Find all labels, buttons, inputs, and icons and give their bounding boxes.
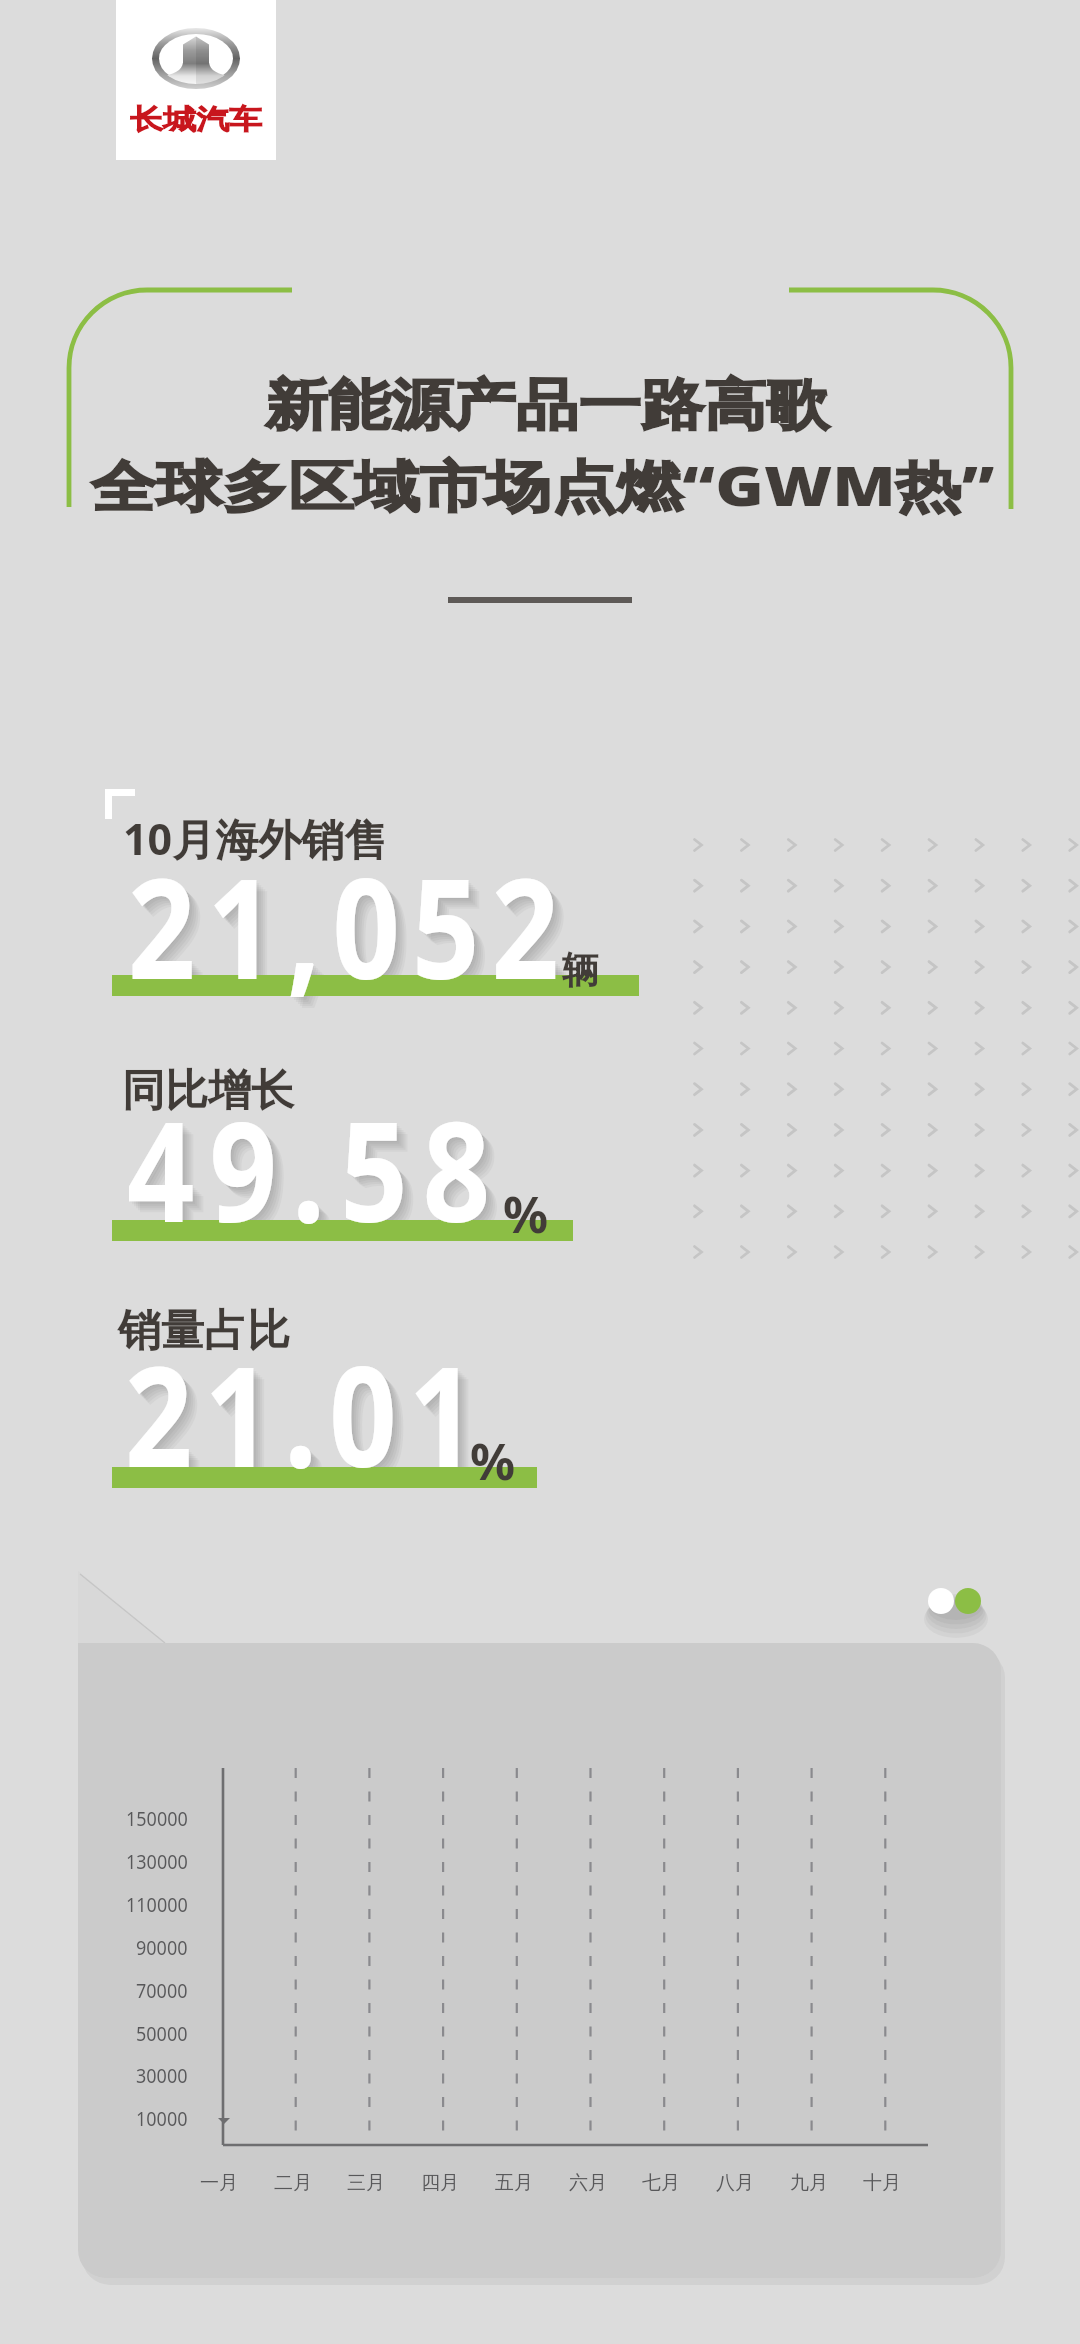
staticText: 21,052 xyxy=(137,841,581,1029)
staticText: 新能源产品一路高歌 xyxy=(265,371,829,440)
staticText: 49.58 xyxy=(138,1086,517,1274)
staticText: 30000 xyxy=(136,2061,188,2090)
staticText: % xyxy=(470,1427,516,1495)
staticText: 21.01 xyxy=(132,1327,496,1515)
button[interactable]: 10月海外销售 21,052辆 xyxy=(105,797,645,1005)
staticText: 10000 xyxy=(136,2104,188,2133)
staticText: 21.01 xyxy=(128,1323,492,1511)
staticText: 21,052 xyxy=(135,839,579,1027)
staticText: 全球多区域市场点燃“GWM热” xyxy=(91,447,994,522)
button[interactable]: Page 1 xyxy=(928,1588,954,1614)
staticText: 49.58 xyxy=(136,1084,515,1272)
staticText: 90000 xyxy=(136,1933,188,1962)
staticText: 150000 xyxy=(126,1804,188,1833)
staticText: 五月 xyxy=(495,2171,533,2195)
button[interactable]: GWM 长城汽车 logo xyxy=(116,0,276,160)
staticText: 21,052 xyxy=(129,833,573,1021)
staticText: 二月 xyxy=(274,2171,312,2195)
staticText: 21.01 xyxy=(134,1329,498,1517)
staticText: 130000 xyxy=(126,1847,188,1876)
staticText: 辆 xyxy=(562,947,599,994)
staticText: 49.58 xyxy=(134,1082,513,1270)
staticText: 同比增长 xyxy=(122,1064,294,1118)
staticText: 21,052 xyxy=(133,837,577,1025)
staticText: 七月 xyxy=(642,2171,680,2195)
staticText: 70000 xyxy=(136,1976,188,2005)
staticText: 10月海外销售 xyxy=(123,809,388,868)
staticText: 21.01 xyxy=(130,1325,494,1513)
staticText: 110000 xyxy=(126,1890,188,1919)
button[interactable]: 销量占比 21.01% xyxy=(105,1292,645,1497)
staticText: 四月 xyxy=(421,2171,459,2195)
staticText: 49.58 xyxy=(127,1075,506,1263)
button[interactable]: Page 2, selected xyxy=(955,1588,981,1614)
staticText: 九月 xyxy=(790,2171,828,2195)
staticText: 21,052 xyxy=(139,843,583,1031)
staticText: 三月 xyxy=(347,2171,385,2195)
staticText: 八月 xyxy=(716,2171,754,2195)
staticText: 销量占比 xyxy=(118,1304,290,1358)
staticText: 21.01 xyxy=(126,1321,490,1509)
staticText: 49.58 xyxy=(128,1076,507,1264)
staticText: 长城汽车 xyxy=(130,102,262,137)
staticText: 49.58 xyxy=(130,1078,509,1266)
staticText: 21.01 xyxy=(136,1331,500,1519)
staticText: 一月 xyxy=(200,2171,238,2195)
staticText: 21,052 xyxy=(128,832,572,1020)
staticText: 50000 xyxy=(136,2019,188,2048)
staticText: 21,052 xyxy=(131,835,575,1023)
staticText: 49.58 xyxy=(132,1080,511,1268)
button[interactable]: 同比增长 49.58% xyxy=(105,1052,645,1250)
staticText: 六月 xyxy=(569,2171,607,2195)
staticText: % xyxy=(503,1180,549,1248)
staticText: 21.01 xyxy=(125,1320,489,1508)
button[interactable]: 月度销量走势图表 xyxy=(78,1643,1001,2278)
staticText: 十月 xyxy=(863,2171,901,2195)
